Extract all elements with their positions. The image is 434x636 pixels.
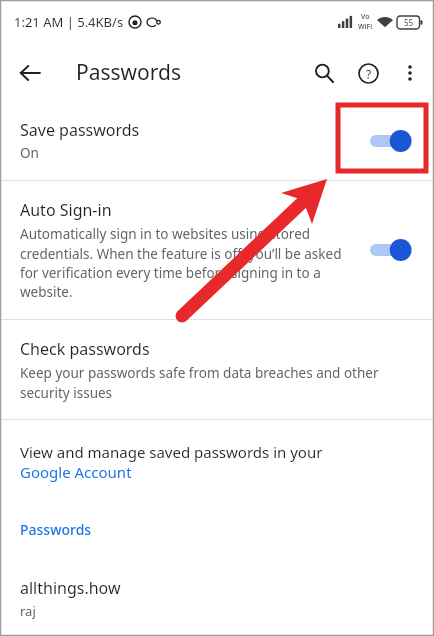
staticText: Google Account — [20, 462, 132, 482]
staticText: 55 — [404, 17, 414, 28]
staticText: Vo — [361, 12, 370, 22]
staticText: Auto Sign-in — [20, 199, 112, 221]
staticText: Keep your passwords safe from data breac… — [20, 364, 412, 402]
staticText: Automatically sign in to websites using … — [20, 225, 358, 301]
staticText: raj — [20, 602, 36, 620]
staticText: Save passwords — [20, 119, 140, 141]
button[interactable]: allthings.how — [0, 543, 434, 634]
staticText: View and manage saved passwords in your — [20, 442, 323, 462]
button[interactable]: Back — [8, 51, 52, 95]
button[interactable]: Save passwords — [0, 101, 434, 180]
staticText: allthings.how — [20, 577, 121, 599]
button[interactable]: More options — [390, 53, 430, 93]
staticText: ? — [366, 66, 372, 82]
staticText: WiFi — [358, 22, 373, 32]
button[interactable]: Search — [302, 51, 346, 95]
staticText: On — [20, 144, 39, 162]
staticText: Check passwords — [20, 338, 150, 360]
staticText: Passwords — [20, 520, 92, 539]
button[interactable]: Help — [346, 51, 390, 95]
staticText: Passwords — [76, 58, 182, 87]
staticText: 1:21 AM | 5.4KB/s — [14, 13, 124, 31]
button[interactable]: Auto Sign-in — [0, 181, 434, 319]
button[interactable]: Check passwords — [0, 320, 434, 419]
button[interactable]: View and manage saved passwords in your — [0, 420, 434, 488]
